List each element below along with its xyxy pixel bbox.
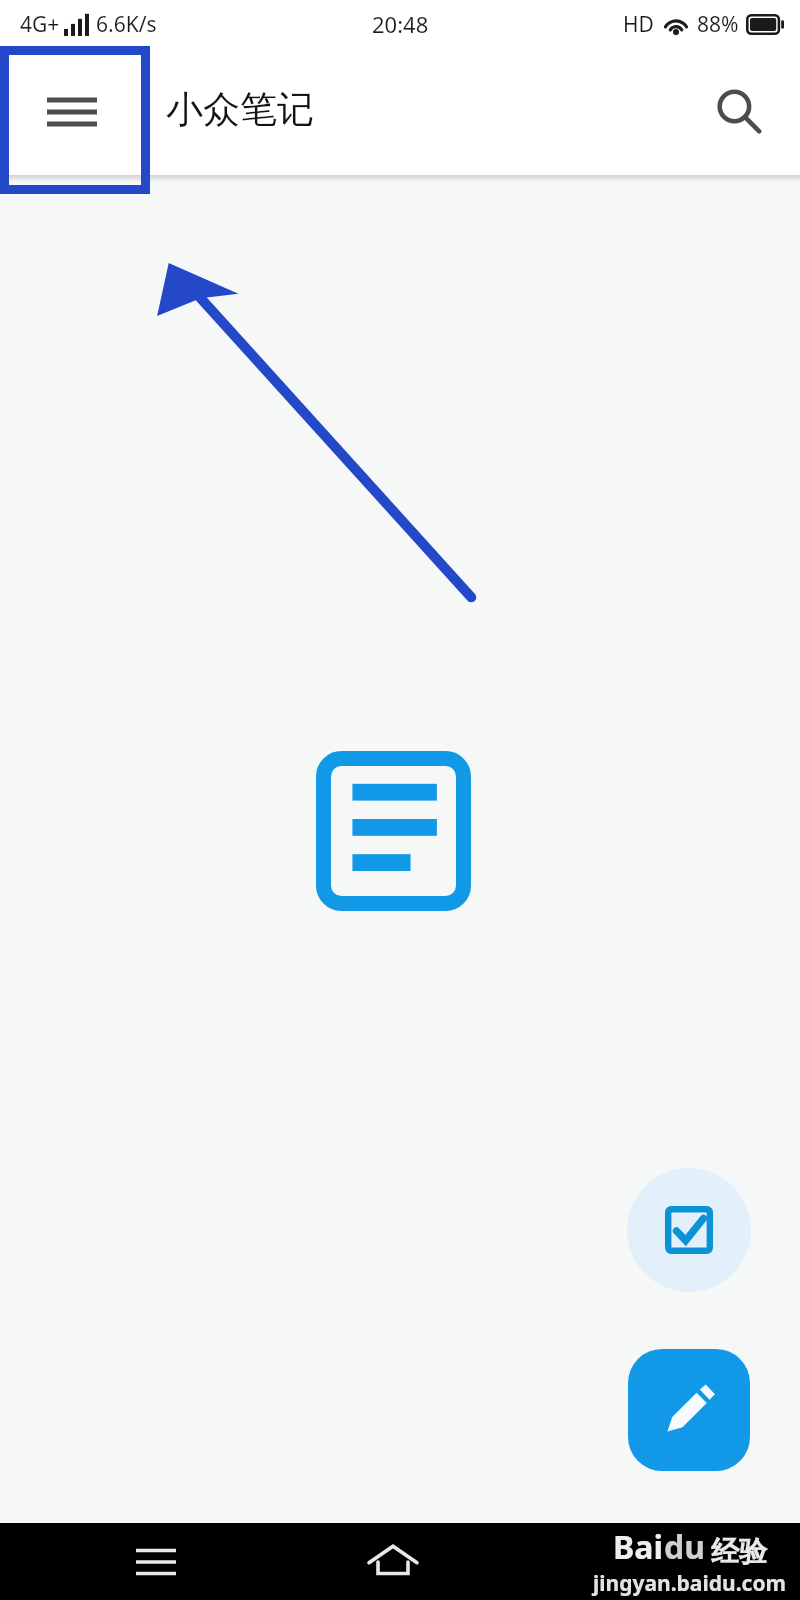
staticText: 88% xyxy=(697,10,739,39)
button[interactable]: Search xyxy=(687,57,791,167)
staticText: Bai xyxy=(613,1525,664,1569)
staticText: HD xyxy=(623,10,654,39)
button[interactable]: New checklist xyxy=(627,1168,751,1292)
button[interactable]: New note xyxy=(628,1349,750,1471)
button[interactable]: Recent apps xyxy=(96,1523,216,1600)
staticText: jingyan.baidu.com xyxy=(593,1569,786,1598)
staticText: 4G+ xyxy=(20,10,60,39)
staticText: du xyxy=(664,1525,706,1569)
staticText: 经验 xyxy=(711,1534,767,1569)
button[interactable]: Open navigation menu xyxy=(6,48,138,175)
staticText: 6.6K/s xyxy=(96,10,157,39)
staticText: 小众笔记 xyxy=(166,86,314,133)
staticText: 20:48 xyxy=(372,9,429,39)
button[interactable]: Home xyxy=(333,1523,453,1600)
